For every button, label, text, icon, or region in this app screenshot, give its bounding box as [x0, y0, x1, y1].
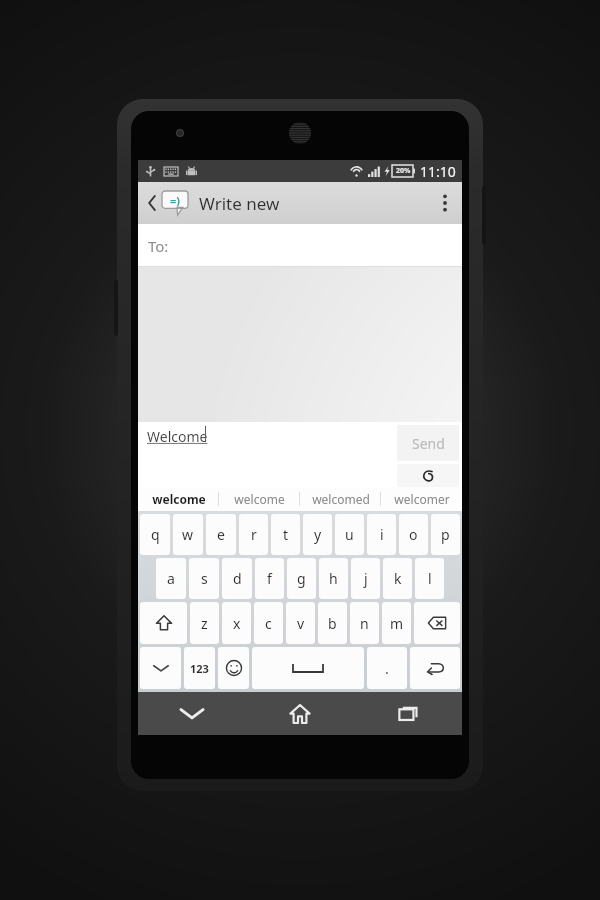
staticText: m: [390, 614, 404, 633]
button[interactable]: q: [140, 514, 170, 555]
button[interactable]: w: [173, 514, 203, 555]
button[interactable]: n: [350, 602, 379, 644]
button[interactable]: e: [206, 514, 236, 555]
staticText: v: [297, 614, 305, 633]
staticText: 123: [190, 661, 209, 676]
button[interactable]: g: [287, 558, 316, 599]
staticText: t: [283, 525, 289, 544]
button[interactable]: f: [255, 558, 284, 599]
button[interactable]: More options: [428, 182, 462, 224]
button[interactable]: o: [399, 514, 428, 555]
button[interactable]: j: [351, 558, 380, 599]
button[interactable]: a: [156, 558, 186, 599]
button[interactable]: m: [382, 602, 411, 644]
button[interactable]: p: [431, 514, 460, 555]
button[interactable]: d: [222, 558, 252, 599]
staticText: Write new: [199, 192, 280, 215]
button[interactable]: v: [286, 602, 315, 644]
staticText: y: [314, 525, 322, 544]
staticText: w: [182, 525, 194, 544]
button[interactable]: s: [189, 558, 219, 599]
button[interactable]: u: [335, 514, 364, 555]
staticText: Send: [412, 434, 445, 453]
button[interactable]: Key: [414, 602, 460, 644]
staticText: 20%: [396, 166, 411, 176]
staticText: r: [251, 525, 257, 544]
button[interactable]: c: [254, 602, 283, 644]
button[interactable]: To:: [138, 224, 462, 267]
staticText: c: [265, 614, 272, 633]
staticText: d: [233, 569, 242, 588]
staticText: e: [217, 525, 225, 544]
staticText: welcomer: [394, 491, 450, 507]
button[interactable]: Key: [140, 647, 181, 689]
staticText: f: [267, 569, 272, 588]
staticText: To:: [148, 236, 169, 256]
button[interactable]: Recent apps: [354, 692, 462, 735]
button[interactable]: welcomer: [381, 487, 462, 511]
button[interactable]: k: [383, 558, 412, 599]
button[interactable]: x: [222, 602, 251, 644]
button[interactable]: Key: [410, 647, 460, 689]
staticText: u: [345, 525, 354, 544]
staticText: k: [394, 569, 402, 588]
staticText: =): [170, 193, 181, 208]
staticText: l: [428, 569, 432, 588]
staticText: j: [364, 569, 368, 588]
button[interactable]: z: [190, 602, 219, 644]
button[interactable]: Key: [140, 602, 187, 644]
button[interactable]: b: [318, 602, 347, 644]
staticText: a: [167, 569, 175, 588]
staticText: i: [380, 525, 384, 544]
button[interactable]: Back: [145, 185, 191, 221]
staticText: p: [441, 525, 450, 544]
button[interactable]: Key: [218, 647, 249, 689]
button[interactable]: welcome: [138, 487, 219, 511]
staticText: q: [151, 525, 160, 544]
staticText: x: [233, 614, 241, 633]
button[interactable]: Back: [138, 692, 246, 735]
button[interactable]: l: [415, 558, 444, 599]
staticText: s: [201, 569, 208, 588]
button[interactable]: welcomed: [300, 487, 381, 511]
button[interactable]: Attach: [397, 464, 459, 487]
staticText: 11:10: [420, 162, 456, 181]
button[interactable]: Space: [252, 647, 364, 689]
staticText: welcomed: [312, 491, 370, 507]
button[interactable]: t: [271, 514, 300, 555]
staticText: welcome: [234, 491, 285, 507]
staticText: z: [201, 614, 208, 633]
staticText: g: [297, 569, 306, 588]
button[interactable]: 123: [184, 647, 215, 689]
button[interactable]: r: [239, 514, 268, 555]
button[interactable]: h: [319, 558, 348, 599]
staticText: welcome: [152, 491, 206, 507]
staticText: b: [328, 614, 337, 633]
staticText: o: [409, 525, 418, 544]
button[interactable]: Home: [246, 692, 354, 735]
button[interactable]: y: [303, 514, 332, 555]
staticText: n: [360, 614, 369, 633]
button[interactable]: .: [367, 647, 407, 689]
staticText: .: [385, 659, 389, 678]
button[interactable]: welcome: [219, 487, 300, 511]
button[interactable]: Send: [397, 425, 459, 461]
staticText: h: [329, 569, 338, 588]
button[interactable]: i: [367, 514, 396, 555]
staticText: Welcome: [147, 427, 208, 446]
